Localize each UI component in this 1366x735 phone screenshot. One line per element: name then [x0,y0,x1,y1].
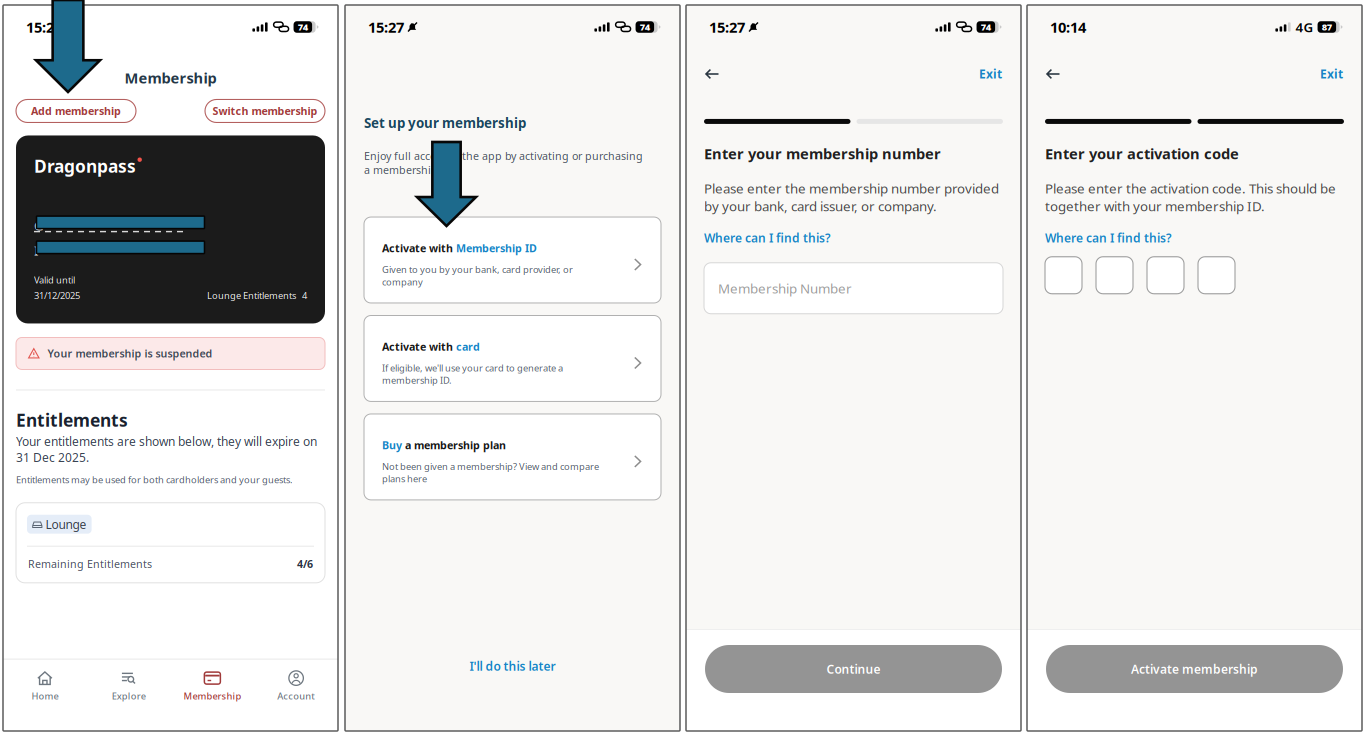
staticText: 4/6 [297,557,313,571]
button[interactable]: Exit [960,57,1021,91]
staticText: 15:27 [368,17,404,37]
staticText: 74 [981,21,991,33]
staticText: I'll do this later [469,658,555,674]
staticText: Activate with [382,339,453,354]
button[interactable]: Activate membership [1046,645,1343,693]
staticText: Your entitlements are shown below, they … [16,433,317,465]
button[interactable]: Buy [364,414,661,500]
staticText: Activate membership [1131,661,1258,677]
button[interactable]: Continue [705,645,1002,693]
staticText: If eligible, we'll use your card to gene… [382,362,563,386]
staticText: Membership [183,690,241,702]
staticText: Enjoy full access to the app by activati… [364,149,643,177]
staticText: Entitlements may be used for both cardho… [16,473,293,486]
staticText: Remaining Entitlements [28,557,152,571]
staticText: Activate with [382,241,453,255]
staticText: 4G [1296,18,1314,36]
staticText: 10:14 [1050,17,1086,37]
staticText: Lounge [46,516,87,532]
staticText: 15:27 [709,17,745,37]
button[interactable]: Switch membership [205,99,325,122]
staticText: Set up your membership [364,114,526,132]
staticText: Please enter the membership number provi… [704,179,999,215]
staticText: 87 [1322,21,1332,33]
staticText: Please enter the activation code. This s… [1045,179,1336,215]
button[interactable]: Home [3,660,87,708]
staticText: Valid until [34,274,75,286]
staticText: I [34,242,39,259]
staticText: Membership [124,68,216,87]
staticText: Entitlements [16,408,128,431]
button[interactable]: Explore [87,660,171,708]
staticText: Explore [112,690,146,702]
button[interactable]: Activate with [364,217,661,303]
staticText: Membership ID [456,241,537,255]
staticText: Continue [826,661,880,677]
button[interactable]: Back [1027,59,1079,88]
staticText: Exit [979,66,1002,82]
staticText: Exit [1320,66,1343,82]
staticText: Lounge Entitlements 4 [207,289,307,301]
staticText: card [456,339,480,354]
staticText: Switch membership [212,104,317,118]
staticText: Where can I find this? [1045,230,1172,246]
staticText: Enter your activation code [1045,144,1239,163]
staticText: Membership Number [718,279,852,297]
button[interactable]: Activate with [364,315,661,401]
button[interactable]: Membership [170,660,254,708]
button[interactable]: Exit [1301,57,1362,91]
staticText: Add membership [31,104,121,118]
button[interactable]: I'll do this later [345,648,680,684]
staticText: Buy [382,438,402,452]
button[interactable]: Account [254,660,338,708]
staticText: Where can I find this? [704,230,831,246]
staticText: 74 [298,21,308,33]
staticText: a membership plan [405,438,506,452]
staticText: G [34,217,44,234]
button[interactable]: Where can I find this? [704,227,831,249]
button[interactable]: Add membership [16,99,136,122]
staticText: 31/12/2025 [34,289,80,301]
staticText: Given to you by your bank, card provider… [382,263,573,288]
button[interactable]: Back [686,59,738,88]
button[interactable]: Where can I find this? [1045,227,1172,249]
staticText: Your membership is suspended [48,346,213,361]
staticText: Home [31,690,58,702]
staticText: Enter your membership number [704,144,941,163]
staticText: Not been given a membership? View and co… [382,460,599,485]
staticText: 74 [640,21,650,33]
staticText: Account [277,690,315,702]
staticText: 15:27 [26,17,62,37]
staticText: Dragonpass [34,154,136,177]
